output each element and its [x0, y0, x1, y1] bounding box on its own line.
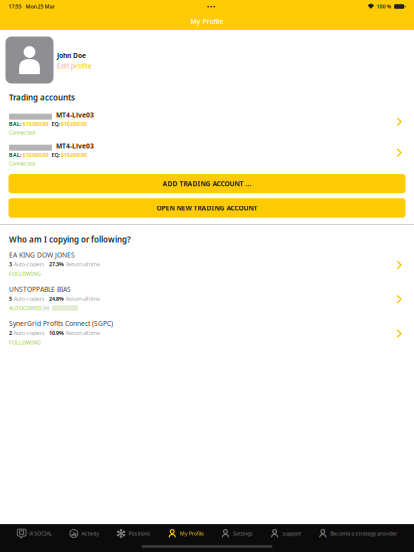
button[interactable]: Edit profile: [57, 61, 92, 69]
staticText: • • •: [207, 3, 215, 10]
button[interactable]: ADD TRADING ACCOUNT ...: [8, 174, 405, 193]
staticText: John Doe: [57, 51, 86, 60]
staticText: Activity: [81, 530, 99, 537]
staticText: EA KING DOW JONES: [9, 250, 75, 259]
staticText: Connected: [9, 160, 35, 167]
staticText: Auto-copiers: [14, 329, 45, 336]
staticText: Return all time: [66, 261, 100, 268]
staticText: BAL:: [9, 120, 21, 127]
staticText: AUTOCOPIED IN: [9, 305, 49, 312]
staticText: 5: [9, 295, 12, 302]
staticText: 24.8%: [49, 295, 64, 302]
staticText: $10,000.00: [61, 120, 87, 127]
staticText: $10,000.00: [22, 151, 48, 158]
button[interactable]: Become a strategy provider: [318, 525, 397, 541]
staticText: $10,000.00: [61, 151, 87, 158]
staticText: FOLLOWING: [9, 339, 41, 346]
staticText: OPEN NEW TRADING ACCOUNT: [156, 203, 257, 212]
button[interactable]: My Profile: [167, 525, 204, 541]
staticText: Trading accounts: [9, 92, 75, 103]
staticText: 17:55: [8, 3, 21, 10]
staticText: 27.3%: [49, 261, 64, 268]
staticText: Positions: [129, 530, 151, 537]
staticText: Settings: [233, 530, 253, 537]
staticText: 100 %: [377, 3, 392, 10]
button[interactable]: MT4-Live03: [0, 102, 414, 133]
staticText: BAL:: [9, 151, 21, 158]
button[interactable]: Positions: [116, 525, 151, 541]
staticText: Support: [282, 530, 301, 537]
staticText: 2: [9, 329, 12, 336]
staticText: Auto-copiers: [14, 295, 45, 302]
button[interactable]: Settings: [220, 525, 253, 541]
staticText: EQ:: [51, 151, 59, 158]
staticText: EQ:: [51, 120, 59, 127]
staticText: iX SOCIAL: [29, 530, 52, 537]
button[interactable]: UNSTOPPABLE BIAS: [0, 279, 414, 313]
staticText: Return all time: [66, 329, 100, 336]
button[interactable]: OPEN NEW TRADING ACCOUNT: [8, 198, 405, 218]
staticText: Connected: [9, 129, 35, 136]
staticText: SynerGrid Profits Connect (SGPC): [9, 319, 113, 328]
staticText: Who am I copying or following?: [9, 234, 131, 245]
staticText: ADD TRADING ACCOUNT ...: [162, 179, 251, 188]
button[interactable]: Support: [270, 525, 301, 541]
staticText: MT4-Live03: [56, 110, 94, 119]
button[interactable]: EA KING DOW JONES: [0, 244, 414, 279]
staticText: Edit profile: [57, 61, 92, 70]
staticText: UNSTOPPABLE BIAS: [9, 285, 71, 294]
button[interactable]: MT4-Live03: [0, 133, 414, 164]
staticText: FOLLOWING: [9, 270, 41, 277]
button[interactable]: iX SOCIAL: [17, 525, 52, 541]
staticText: 3: [9, 261, 12, 268]
staticText: My Profile: [180, 530, 204, 537]
staticText: MT4-Live03: [56, 141, 94, 150]
button[interactable]: SynerGrid Profits Connect (SGPC): [0, 313, 414, 347]
button[interactable]: Activity: [69, 525, 99, 541]
staticText: My Profile: [190, 17, 223, 26]
staticText: Mon 25 Mar: [25, 3, 54, 10]
staticText: Become a strategy provider: [330, 530, 397, 537]
staticText: Return all time: [66, 295, 100, 302]
staticText: $10,000.00: [22, 120, 48, 127]
staticText: 10.9%: [49, 329, 64, 336]
staticText: Auto-copiers: [14, 261, 45, 268]
